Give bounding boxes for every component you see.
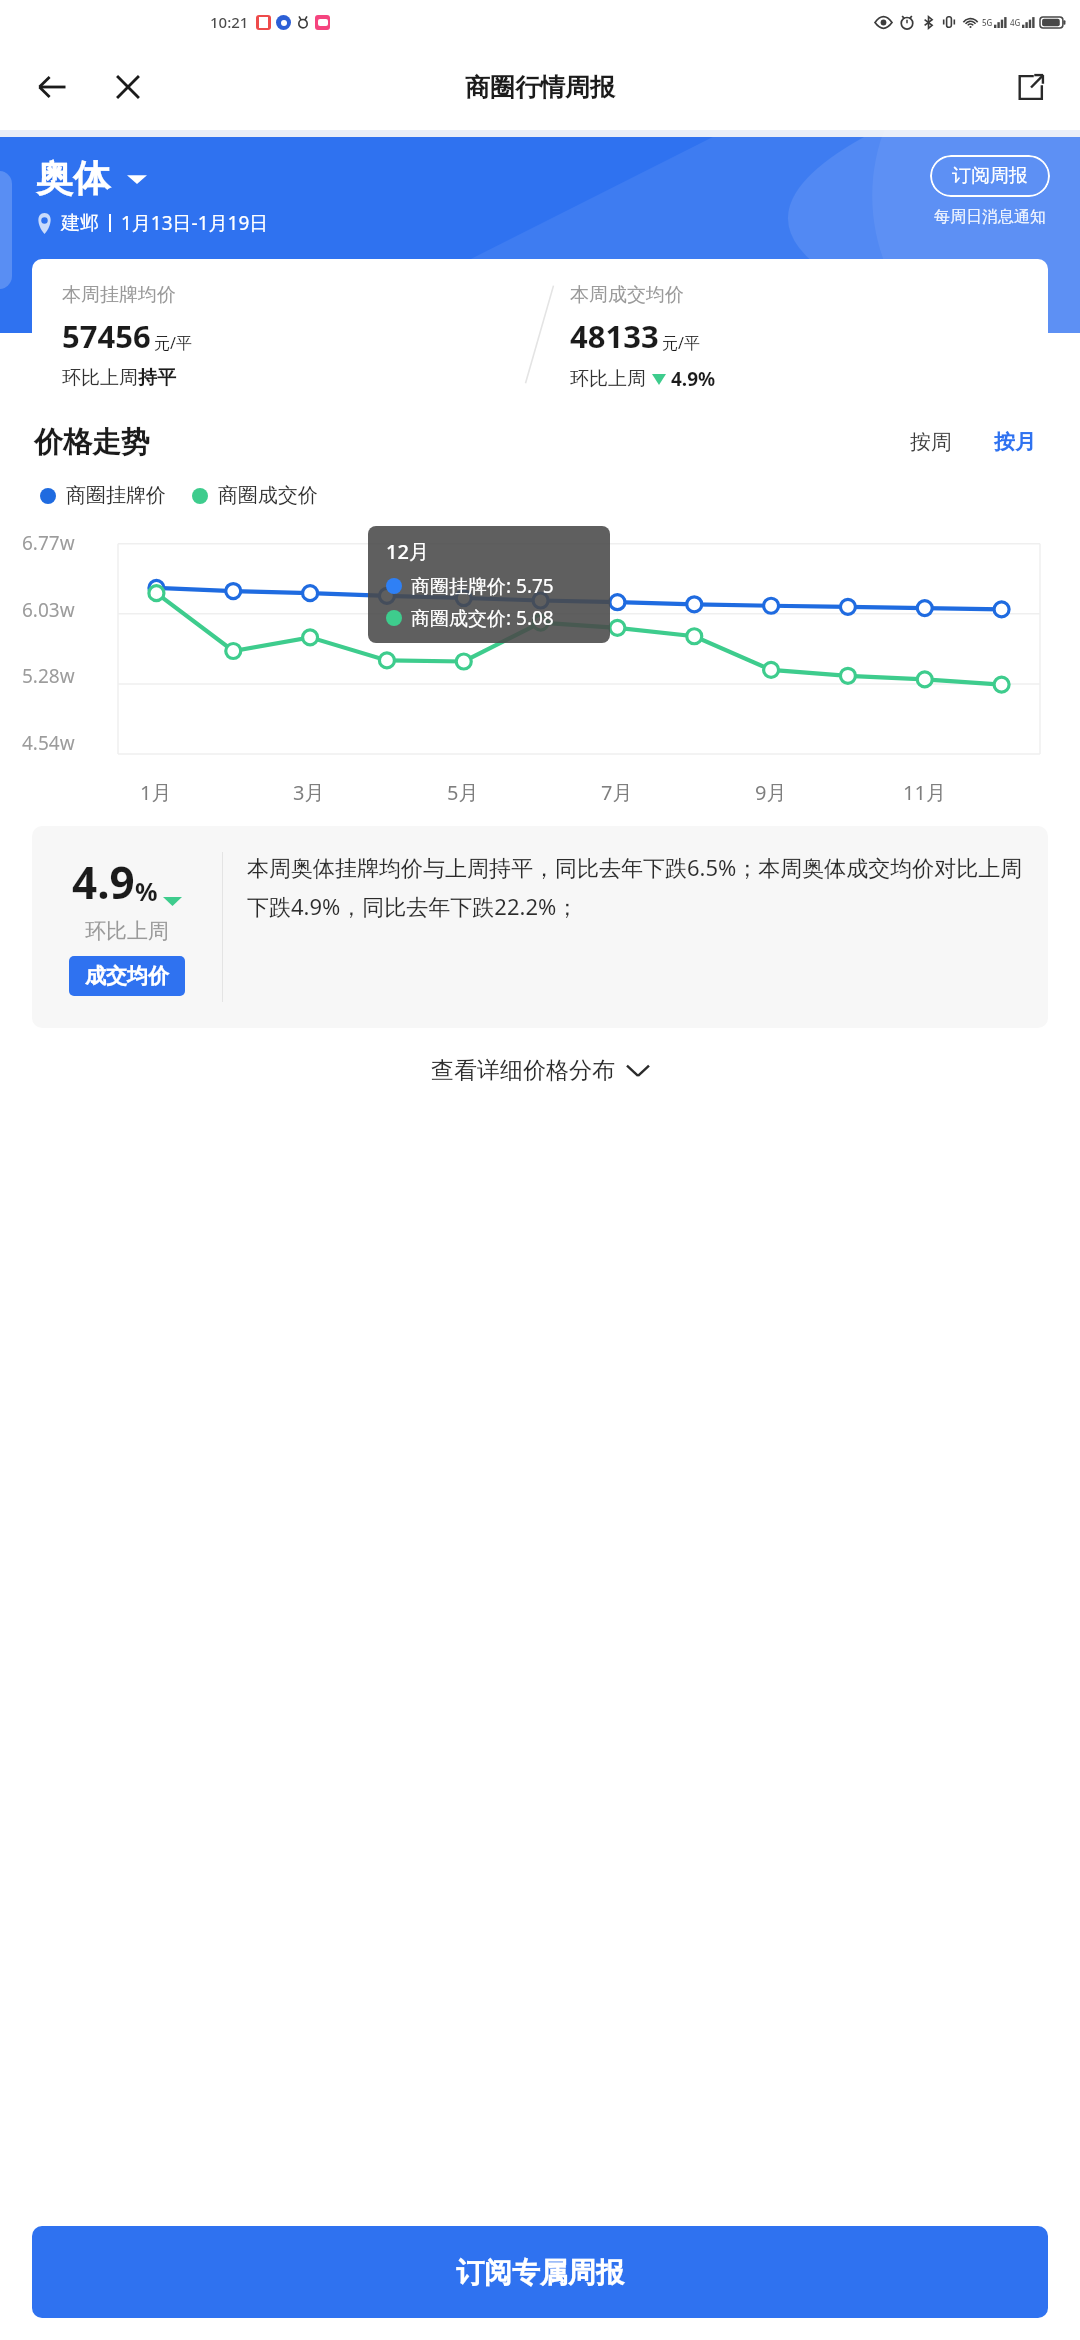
staticText: 5G bbox=[982, 17, 993, 28]
button[interactable]: 按周 bbox=[900, 423, 962, 461]
staticText: 4G bbox=[1010, 17, 1021, 28]
staticText: 订阅专属周报 bbox=[456, 2255, 624, 2290]
staticText: 6.03w bbox=[22, 597, 75, 623]
staticText: 查看详细价格分布 bbox=[431, 1056, 615, 1085]
staticText: 商圈行情周报 bbox=[465, 72, 615, 103]
staticText: 11月 bbox=[903, 779, 946, 806]
staticText: 价格走势 bbox=[34, 424, 150, 461]
staticText: 4.9% bbox=[671, 366, 716, 392]
staticText: 5.28w bbox=[22, 663, 75, 689]
button[interactable]: 订阅专属周报 bbox=[32, 2226, 1048, 2318]
staticText: 1月 bbox=[140, 779, 172, 806]
staticText: 元/平 bbox=[154, 332, 192, 354]
staticText: 本周成交均价 bbox=[570, 283, 684, 307]
staticText: 元/平 bbox=[662, 332, 700, 354]
staticText: 环比上周 bbox=[62, 366, 138, 390]
staticText: 10:21 bbox=[210, 12, 249, 32]
staticText: 57456 bbox=[62, 315, 151, 357]
staticText: 7月 bbox=[601, 779, 633, 806]
staticText: 6.77w bbox=[22, 530, 75, 556]
staticText: 奥体 bbox=[36, 155, 110, 202]
staticText: 按周 bbox=[910, 429, 952, 455]
staticText: 4.9 bbox=[72, 852, 135, 912]
staticText: 4.54w bbox=[22, 730, 75, 756]
staticText: 持平 bbox=[138, 366, 176, 390]
staticText: 48133 bbox=[570, 315, 659, 357]
staticText: 环比上周 bbox=[85, 918, 169, 944]
button[interactable]: Back bbox=[26, 61, 78, 113]
staticText: 订阅周报 bbox=[952, 164, 1028, 188]
staticText: 12月 bbox=[386, 538, 429, 565]
staticText: 商圈挂牌价: 5.75 bbox=[411, 573, 554, 599]
staticText: 9月 bbox=[755, 779, 787, 806]
staticText: 5月 bbox=[447, 779, 479, 806]
button[interactable]: 切换商圈 bbox=[122, 164, 152, 194]
button[interactable]: Share bbox=[1006, 63, 1054, 111]
staticText: 本周奥体挂牌均价与上周持平，同比去年下跌6.5%；本周奥体成交均价对比上周下跌4… bbox=[247, 852, 1032, 921]
staticText: 成交均价 bbox=[85, 963, 169, 989]
staticText: 每周日消息通知 bbox=[934, 207, 1046, 227]
button[interactable]: 查看详细价格分布 bbox=[0, 1042, 1080, 1099]
staticText: 商圈挂牌价 bbox=[66, 483, 166, 508]
staticText: 1月13日-1月19日 bbox=[121, 210, 269, 236]
staticText: 本周挂牌均价 bbox=[62, 283, 176, 307]
staticText: 建邺 bbox=[61, 211, 99, 235]
staticText: 3月 bbox=[293, 779, 325, 806]
button[interactable]: 按月 bbox=[984, 423, 1046, 461]
staticText: 环比上周 bbox=[570, 367, 646, 391]
staticText: % bbox=[135, 874, 158, 908]
staticText: 商圈成交价: 5.08 bbox=[411, 605, 554, 631]
button[interactable]: 订阅周报 bbox=[930, 155, 1050, 197]
staticText: 商圈成交价 bbox=[218, 483, 318, 508]
staticText: 按月 bbox=[994, 429, 1036, 455]
button[interactable]: Close bbox=[102, 61, 154, 113]
button[interactable]: 成交均价 bbox=[69, 956, 185, 996]
